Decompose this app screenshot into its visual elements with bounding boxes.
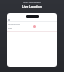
button[interactable]: Back — [7, 18, 57, 21]
button[interactable]: Sharing since — [7, 22, 57, 31]
staticText: Sharing since — [8, 23, 20, 26]
staticText: Kelly Monaghan — [0, 1, 64, 4]
staticText: Stop — [8, 27, 13, 30]
staticText: Live Location — [0, 5, 64, 9]
